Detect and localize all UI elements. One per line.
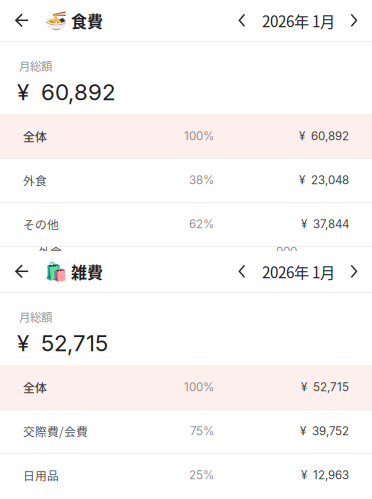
button[interactable]: Back — [7, 251, 37, 292]
staticText: 全体 — [23, 127, 47, 145]
staticText: 月総額 — [19, 57, 52, 74]
button[interactable]: 🍜 — [37, 0, 103, 41]
staticText: 雑費 — [71, 260, 103, 283]
staticText: 日用品 — [23, 466, 59, 484]
button[interactable]: 全体 — [0, 365, 372, 409]
staticText: ¥ 52,715 — [17, 329, 108, 356]
staticText: 交際費/会費 — [23, 422, 88, 440]
button[interactable]: 交際費/会費 — [0, 409, 372, 453]
staticText: 25% — [189, 468, 214, 482]
staticText: 🍜 — [45, 10, 67, 31]
staticText: 🛍️ — [45, 261, 67, 282]
button[interactable]: 日用品 — [0, 453, 372, 497]
staticText: 外食 — [23, 171, 47, 189]
button[interactable]: 🛍️ — [37, 251, 103, 292]
staticText: ¥ 60,892 — [17, 78, 115, 105]
staticText: 62% — [189, 217, 214, 231]
button[interactable]: Next month — [342, 251, 366, 292]
staticText: ¥ 12,963 — [301, 468, 349, 482]
button[interactable]: Previous month — [230, 251, 254, 292]
staticText: 月総額 — [19, 308, 52, 325]
button[interactable]: 外食 — [0, 246, 372, 276]
button[interactable]: Next month — [342, 0, 366, 41]
staticText: ¥ 23,048 — [299, 173, 349, 187]
staticText: その他 — [23, 215, 59, 233]
button[interactable]: 全体 — [0, 114, 372, 158]
button[interactable]: 外食 — [0, 158, 372, 202]
button[interactable]: その他 — [0, 202, 372, 246]
staticText: 75% — [190, 424, 214, 438]
staticText: ¥ 60,892 — [299, 129, 349, 143]
staticText: 2026年 1月 — [262, 9, 335, 31]
staticText: ¥ 52,715 — [301, 380, 349, 394]
staticText: 外食 — [38, 243, 62, 260]
button[interactable]: Back — [7, 0, 37, 41]
staticText: 全体 — [23, 378, 47, 396]
staticText: 食費 — [71, 9, 103, 32]
staticText: ¥ 39,752 — [300, 424, 349, 438]
staticText: 38% — [189, 173, 214, 187]
staticText: ¥ 37,844 — [301, 217, 349, 231]
staticText: 900 — [276, 244, 297, 259]
staticText: 100% — [184, 129, 214, 143]
button[interactable]: Previous month — [230, 0, 254, 41]
staticText: 100% — [184, 380, 214, 394]
staticText: 2026年 1月 — [262, 260, 335, 282]
